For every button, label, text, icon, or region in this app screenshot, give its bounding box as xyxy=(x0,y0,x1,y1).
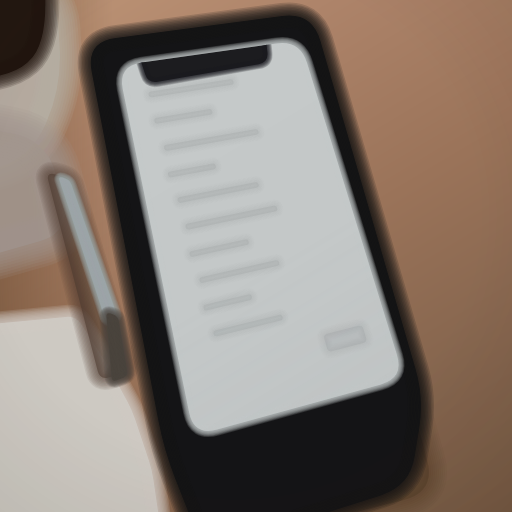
other: Notes app on a phone resting on a wooden… xyxy=(0,0,512,512)
button[interactable]: Open note list xyxy=(0,0,512,512)
